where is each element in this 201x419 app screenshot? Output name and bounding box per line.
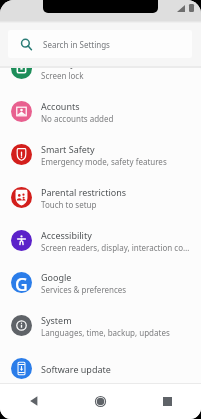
- staticText: Accessibility: [41, 229, 92, 241]
- button[interactable]: Recent apps: [134, 383, 201, 419]
- staticText: Search in Settings: [43, 39, 110, 50]
- button[interactable]: Search in Settings: [8, 30, 192, 58]
- button[interactable]: Back: [0, 383, 67, 419]
- staticText: Languages, time, backup, updates: [41, 327, 170, 338]
- button[interactable]: Accounts: [0, 90, 201, 133]
- staticText: Google: [41, 271, 72, 283]
- staticText: Touch to setup: [41, 199, 97, 210]
- staticText: Parental restrictions: [41, 186, 127, 198]
- staticText: G: [15, 272, 28, 293]
- staticText: Security: [41, 68, 75, 69]
- staticText: Screen readers, display, interaction co…: [41, 242, 190, 253]
- button[interactable]: Home: [67, 383, 134, 419]
- staticText: Emergency mode, safety features: [41, 156, 167, 167]
- button[interactable]: Accessibility: [0, 219, 201, 262]
- staticText: Smart Safety: [41, 143, 95, 155]
- staticText: System: [41, 314, 72, 326]
- button[interactable]: Smart Safety: [0, 133, 201, 176]
- button[interactable]: Security: [0, 68, 201, 90]
- staticText: Software update: [41, 363, 111, 375]
- staticText: No accounts added: [41, 113, 114, 124]
- button[interactable]: Software update: [0, 347, 201, 383]
- staticText: Services & preferences: [41, 284, 127, 295]
- button[interactable]: Parental restrictions: [0, 176, 201, 219]
- staticText: Screen lock: [41, 70, 84, 81]
- staticText: Accounts: [41, 100, 80, 112]
- button[interactable]: System: [0, 304, 201, 347]
- button[interactable]: G: [0, 261, 201, 304]
